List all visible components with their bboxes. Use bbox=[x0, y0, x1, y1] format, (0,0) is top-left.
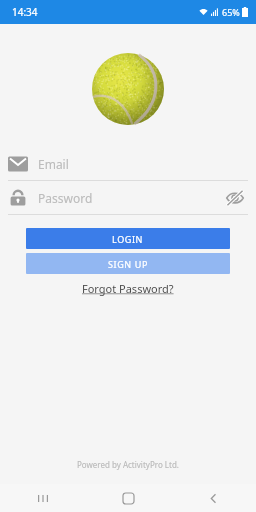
button[interactable]: SIGN UP bbox=[26, 253, 230, 274]
button[interactable]: Back bbox=[171, 484, 256, 512]
button[interactable]: LOGIN bbox=[26, 228, 230, 249]
button[interactable]: Password bbox=[0, 182, 256, 214]
staticText: Password bbox=[38, 190, 222, 206]
button[interactable]: Recent apps bbox=[0, 484, 86, 512]
button[interactable]: Home bbox=[86, 484, 171, 512]
staticText: 14:34 bbox=[12, 5, 38, 19]
staticText: LOGIN bbox=[112, 233, 144, 245]
button[interactable]: Show password bbox=[222, 185, 248, 211]
staticText: Forgot Password? bbox=[82, 281, 174, 296]
staticText: Powered by ActivityPro Ltd. bbox=[77, 459, 179, 470]
staticText: Email bbox=[38, 156, 248, 172]
button[interactable]: Forgot Password? bbox=[76, 279, 180, 298]
staticText: SIGN UP bbox=[108, 258, 148, 270]
button[interactable]: Email bbox=[0, 148, 256, 180]
staticText: 65% bbox=[222, 6, 240, 18]
